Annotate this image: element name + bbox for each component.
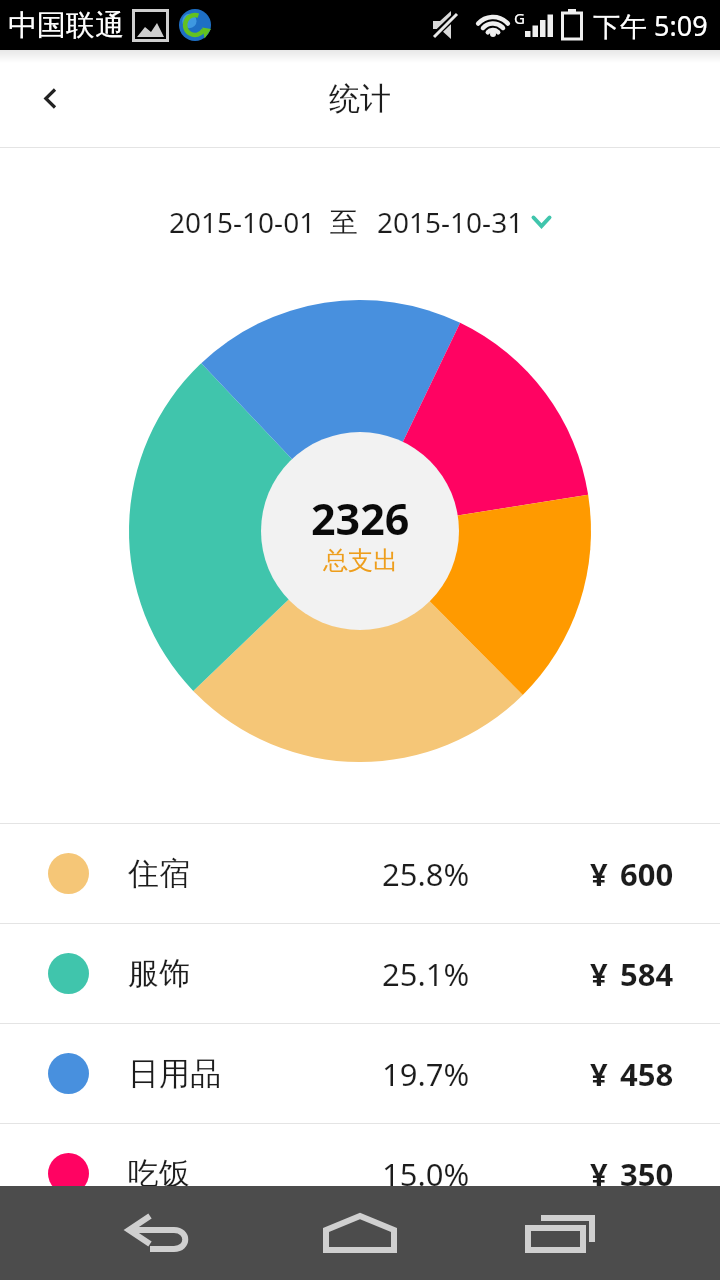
button[interactable]: Home: [280, 1186, 440, 1280]
staticText: 25.8%: [382, 853, 470, 895]
button[interactable]: Back: [80, 1186, 240, 1280]
staticText: 600: [620, 853, 674, 895]
staticText: 584: [620, 953, 674, 995]
button[interactable]: Recents: [480, 1186, 640, 1280]
button[interactable]: 服饰: [0, 924, 720, 1023]
button[interactable]: 其他: [0, 1224, 720, 1280]
staticText: 日用品: [128, 1054, 221, 1093]
button[interactable]: 2015-10-01: [2, 178, 720, 266]
staticText: 统计: [329, 79, 391, 118]
staticText: 至: [330, 205, 358, 240]
staticText: 2015-10-01: [169, 203, 316, 241]
staticText: 中国联通: [8, 7, 124, 44]
staticText: G: [514, 8, 525, 28]
staticText: 服饰: [128, 954, 190, 993]
staticText: ¥: [590, 853, 608, 895]
staticText: ¥: [590, 1153, 608, 1195]
staticText: 吃饭: [128, 1154, 190, 1193]
button[interactable]: Back: [0, 50, 100, 147]
staticText: 350: [620, 1153, 674, 1195]
staticText: 25.1%: [382, 953, 470, 995]
staticText: 2015-10-31: [377, 203, 524, 241]
staticText: ¥: [590, 1053, 608, 1095]
staticText: 458: [620, 1053, 674, 1095]
staticText: 下午 5:09: [593, 7, 708, 44]
button[interactable]: 吃饭: [0, 1124, 720, 1223]
staticText: 19.7%: [382, 1053, 470, 1095]
button[interactable]: 住宿: [0, 824, 720, 923]
staticText: ¥: [590, 953, 608, 995]
staticText: 2326: [311, 489, 410, 548]
staticText: 15.0%: [382, 1153, 470, 1195]
staticText: 总支出: [323, 545, 398, 576]
staticText: 住宿: [128, 854, 190, 893]
button[interactable]: 日用品: [0, 1024, 720, 1123]
